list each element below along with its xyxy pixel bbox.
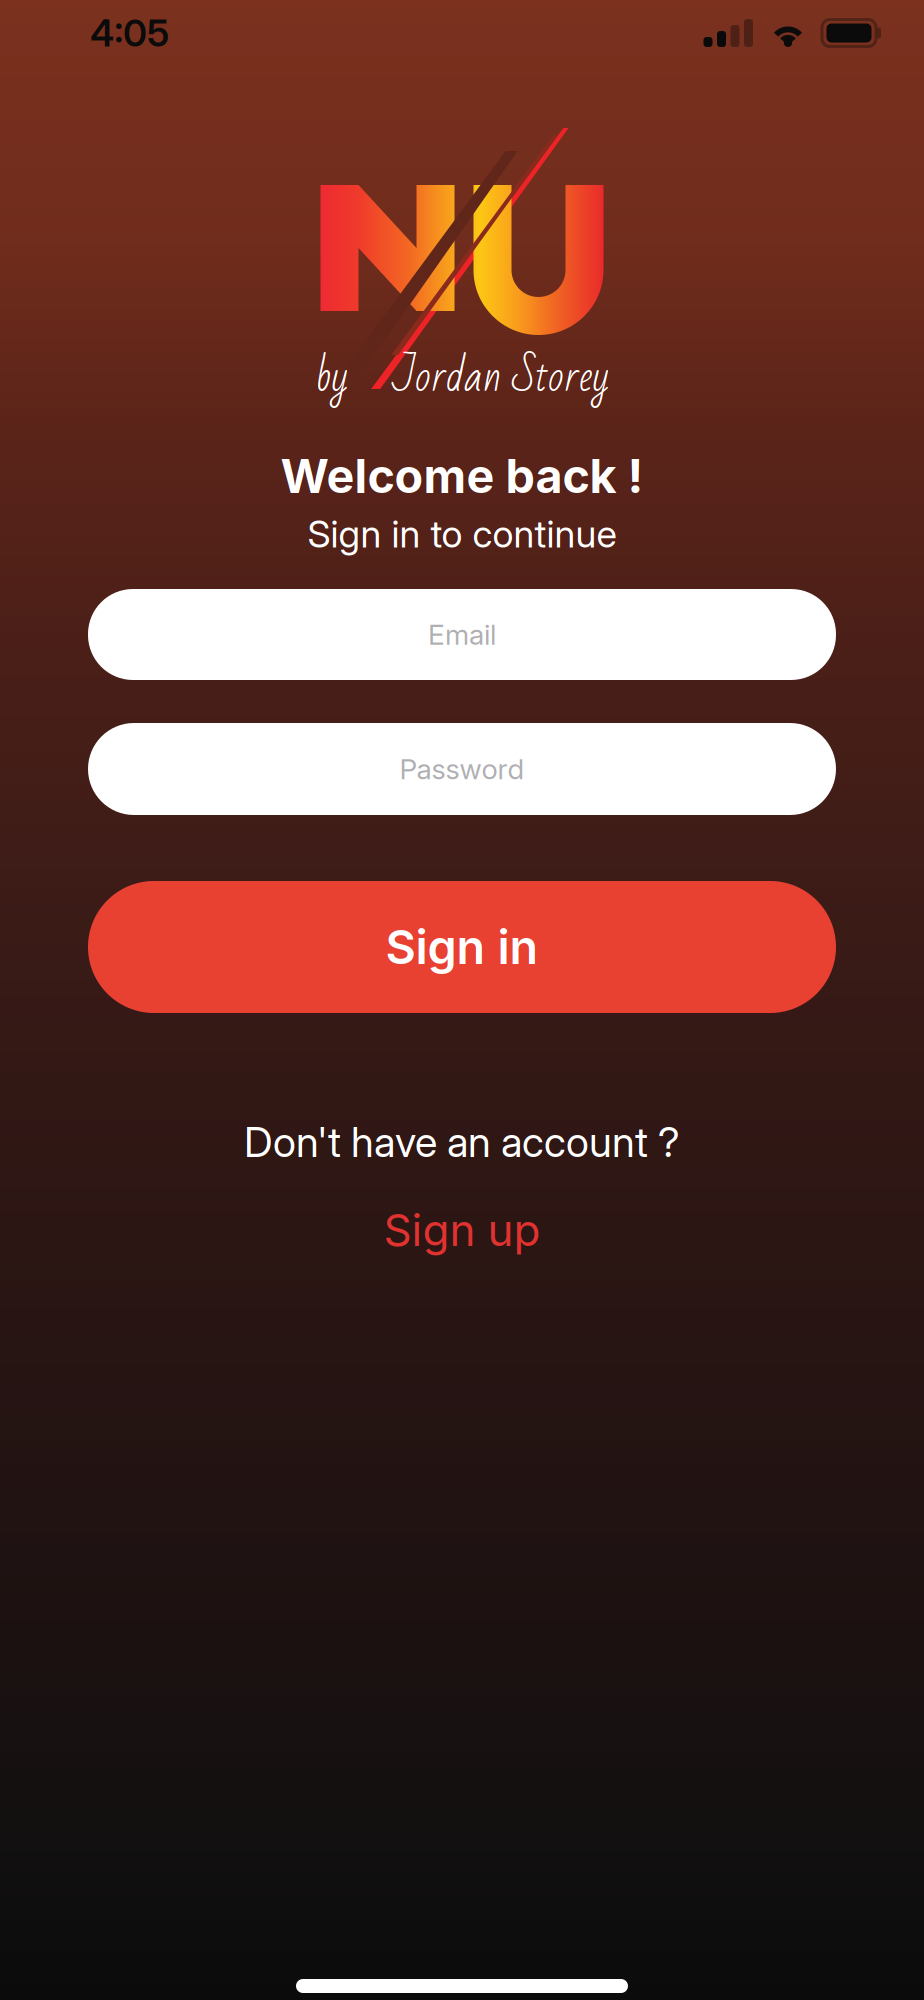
staticText: 4:05 — [90, 10, 169, 56]
staticText: Sign up — [383, 1203, 540, 1257]
staticText: Sign in to continue — [307, 511, 616, 557]
staticText: Don't have an account ? — [244, 1117, 680, 1167]
button[interactable]: Password — [88, 723, 836, 815]
button[interactable]: Email — [88, 589, 836, 680]
staticText: Sign in — [385, 919, 538, 975]
staticText: Jordan Storey — [393, 336, 609, 418]
button[interactable]: Sign up — [353, 1206, 570, 1254]
staticText: by — [315, 336, 348, 418]
staticText: Password — [399, 752, 524, 786]
button[interactable]: Sign in — [88, 881, 836, 1013]
staticText: Email — [428, 618, 496, 651]
staticText: Welcome back ! — [280, 448, 643, 504]
